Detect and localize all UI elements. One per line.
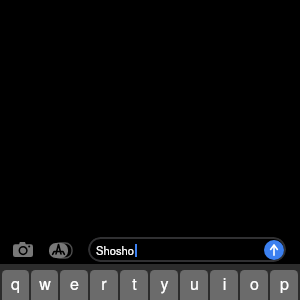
button[interactable]: e [60,270,88,300]
button[interactable]: Send [264,240,284,260]
staticText: w [39,272,51,295]
button[interactable]: App Store [49,243,68,258]
button[interactable]: Camera [13,242,33,257]
button[interactable]: Shosho [88,237,286,262]
button[interactable]: t [120,270,148,300]
button[interactable]: r [90,270,118,300]
staticText: e [70,272,79,295]
button[interactable]: q [2,270,29,300]
button[interactable]: u [180,270,208,300]
staticText: Shosho [96,242,134,258]
staticText: t [132,272,137,295]
staticText: o [250,272,259,295]
button[interactable]: p [270,270,298,300]
button[interactable]: o [240,270,268,300]
staticText: y [160,272,169,295]
button[interactable]: More apps [53,243,72,258]
staticText: u [190,272,199,295]
staticText: q [11,272,20,295]
button[interactable]: y [150,270,178,300]
staticText: p [280,272,289,295]
button[interactable]: w [31,270,58,300]
button[interactable]: i [210,270,238,300]
staticText: i [222,273,227,295]
staticText: r [101,272,107,295]
